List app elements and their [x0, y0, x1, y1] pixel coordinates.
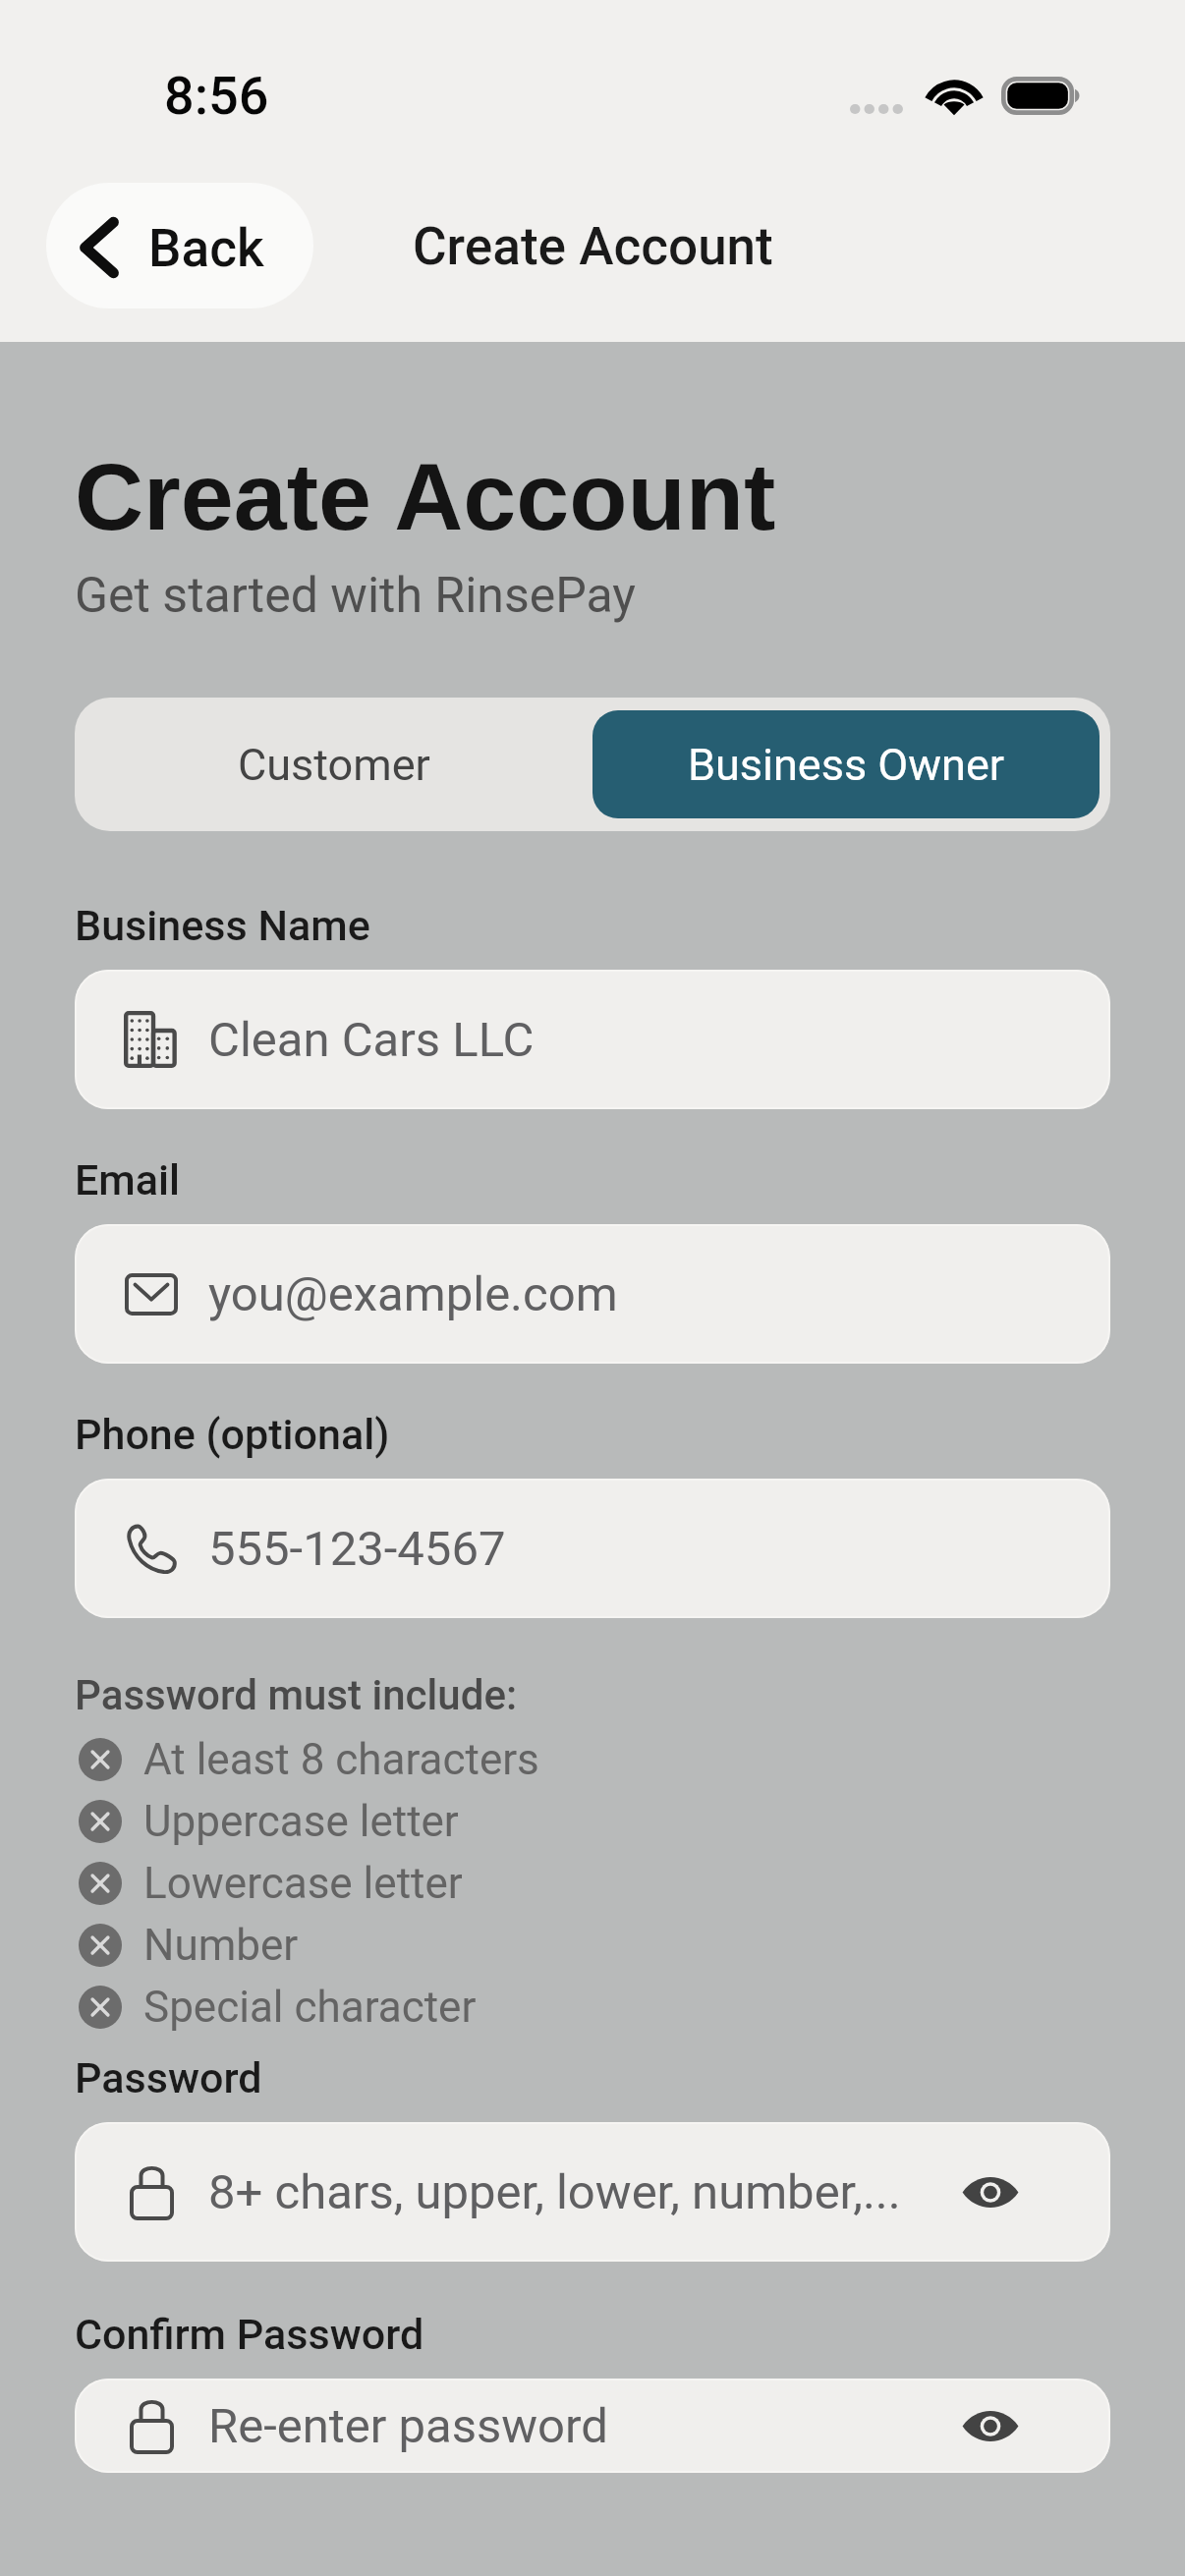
staticText: Special character: [143, 1982, 477, 2033]
staticText: Business Owner: [688, 739, 1005, 791]
staticText: Confirm Password: [75, 2310, 424, 2359]
button[interactable]: Business Owner: [592, 710, 1100, 818]
staticText: Business Name: [75, 901, 370, 950]
button[interactable]: 555-123-4567: [75, 1479, 1110, 1618]
staticText: 8+ chars, upper, lower, number,...: [208, 2164, 901, 2220]
staticText: Password must include:: [75, 1671, 518, 1719]
staticText: Back: [148, 218, 264, 279]
staticText: Phone (optional): [75, 1410, 390, 1459]
button[interactable]: 8+ chars, upper, lower, number,...: [75, 2122, 1110, 2262]
staticText: 555-123-4567: [208, 1521, 506, 1577]
button[interactable]: you@example.com: [75, 1224, 1110, 1364]
staticText: Re-enter password: [208, 2398, 608, 2454]
staticText: Lowercase letter: [143, 1858, 463, 1909]
button[interactable]: Clean Cars LLC: [75, 970, 1110, 1109]
button[interactable]: Back: [46, 183, 313, 308]
staticText: Create Account: [75, 443, 776, 549]
staticText: Password: [75, 2053, 262, 2102]
staticText: Uppercase letter: [143, 1796, 459, 1847]
button[interactable]: Customer: [75, 698, 592, 831]
staticText: Number: [143, 1920, 299, 1971]
staticText: 8:56: [164, 65, 269, 127]
staticText: Create Account: [413, 216, 773, 277]
button[interactable]: Show password: [955, 2390, 1026, 2461]
staticText: you@example.com: [208, 1266, 618, 1322]
staticText: Clean Cars LLC: [208, 1012, 535, 1068]
staticText: At least 8 characters: [143, 1734, 539, 1785]
button[interactable]: Re-enter password: [75, 2379, 1110, 2473]
button[interactable]: Show password: [955, 2156, 1026, 2227]
staticText: Get started with RinsePay: [75, 567, 637, 625]
staticText: Customer: [238, 739, 430, 791]
staticText: Email: [75, 1155, 181, 1204]
